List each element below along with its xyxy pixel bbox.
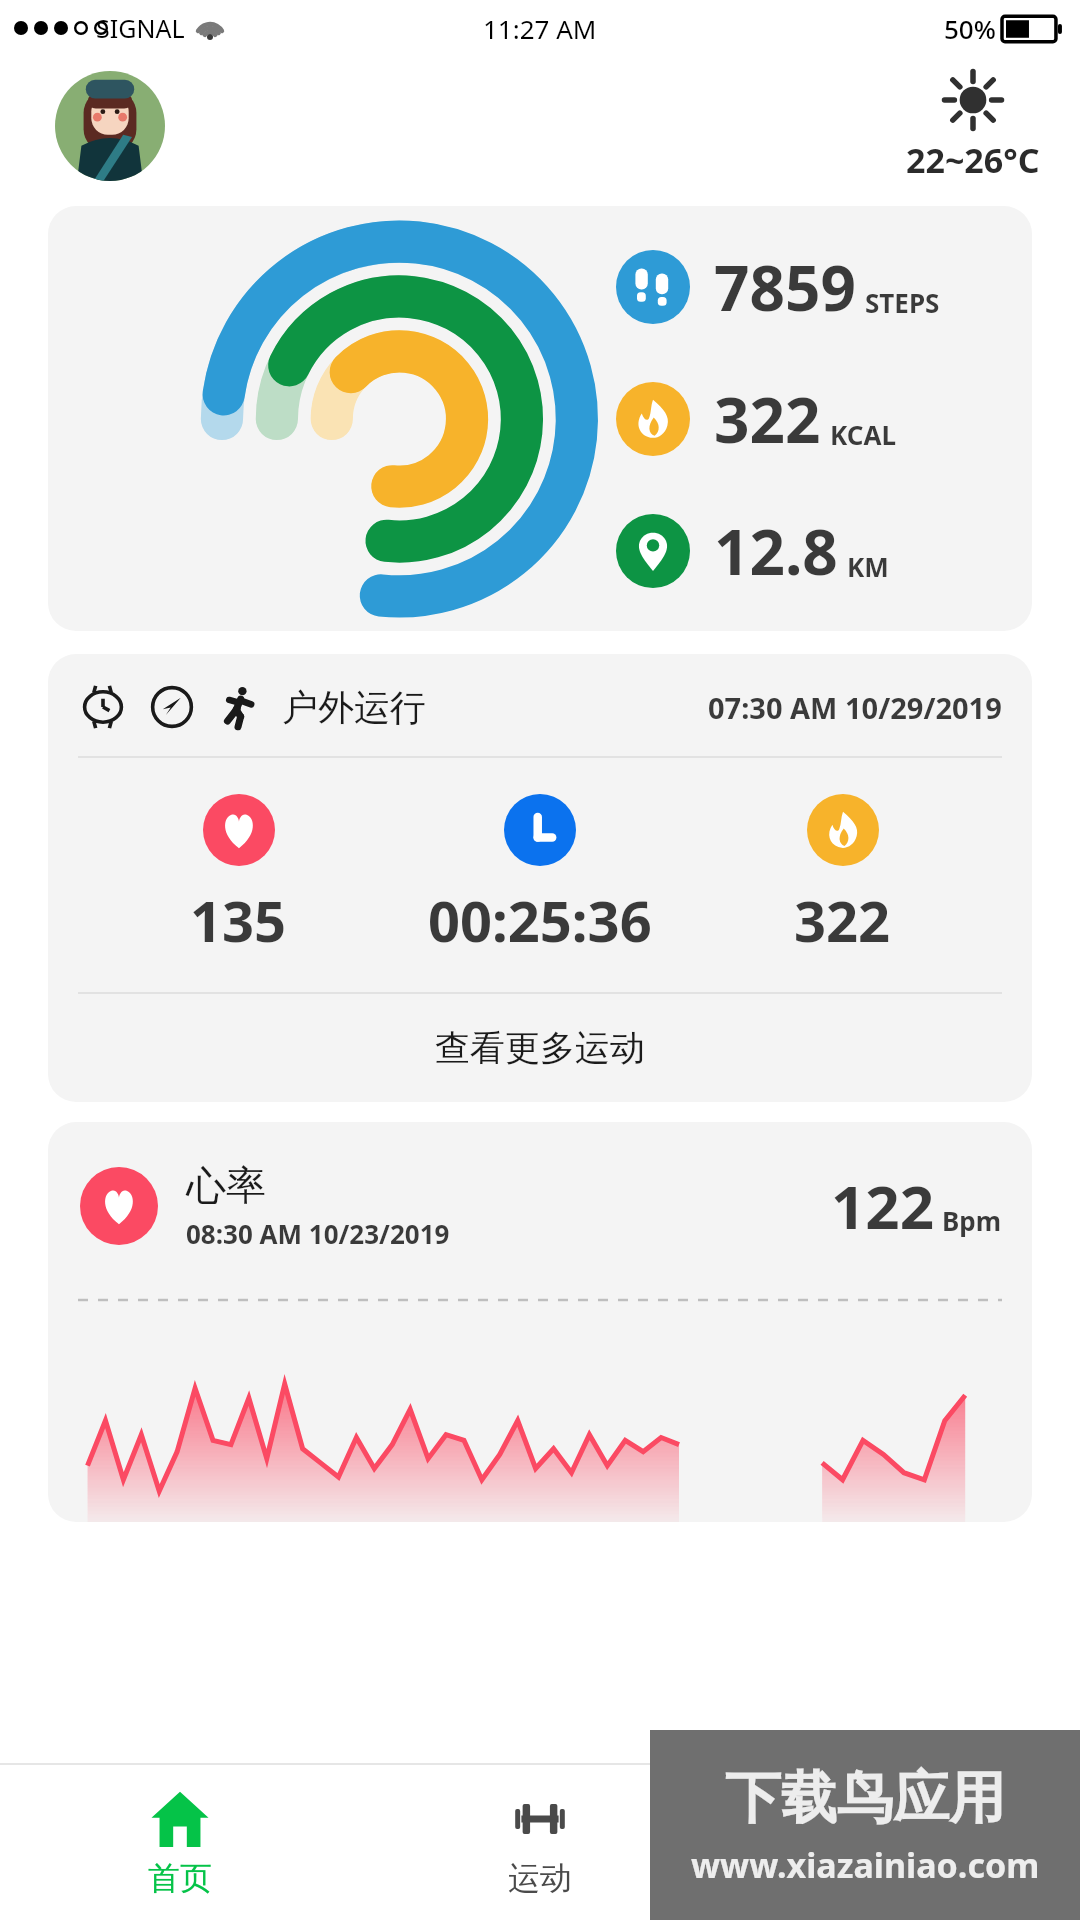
staticText: 135 (190, 882, 287, 958)
staticText: KM (847, 549, 889, 584)
staticText: 122 (831, 1165, 934, 1247)
staticText: STEPS (865, 285, 940, 320)
button[interactable]: 12.8 (616, 509, 889, 593)
staticText: 下载鸟应用 (725, 1763, 1005, 1834)
staticText: 7859 (714, 245, 856, 329)
staticText: 22~26°C (906, 137, 1040, 183)
button[interactable]: 心率 (48, 1122, 1032, 1522)
staticText: 运动 (508, 1858, 572, 1898)
staticText: 首页 (148, 1858, 212, 1898)
staticText: 12.8 (714, 509, 838, 593)
staticText: 322 (794, 882, 891, 958)
staticText: 07:30 AM 10/29/2019 (708, 688, 1002, 727)
staticText: Bpm (942, 1203, 1002, 1238)
staticText: www.xiazainiao.com (691, 1842, 1040, 1888)
button[interactable]: 322 (616, 377, 896, 461)
staticText: 心率 (186, 1160, 266, 1210)
staticText: 50% (944, 11, 996, 46)
button[interactable]: 7859 (616, 245, 940, 329)
staticText: 00:25:36 (428, 882, 652, 958)
staticText: 08:30 AM 10/23/2019 (186, 1216, 450, 1251)
staticText: 查看更多运动 (435, 1026, 645, 1070)
button[interactable]: 户外运行 (48, 654, 1032, 1102)
button[interactable]: Profile (55, 71, 165, 181)
staticText: 322 (714, 377, 821, 461)
button[interactable]: 00:25:36 (428, 794, 652, 958)
staticText: SIGNAL (96, 11, 185, 45)
button[interactable]: Weather (906, 69, 1040, 183)
button[interactable]: 查看更多运动 (48, 994, 1032, 1102)
button[interactable]: 135 (190, 794, 287, 958)
button[interactable]: 首页 (0, 1765, 360, 1920)
button[interactable]: 运动 (360, 1765, 720, 1920)
staticText: 11:27 AM (483, 11, 597, 46)
staticText: 户外运行 (282, 685, 426, 730)
staticText: KCAL (830, 417, 896, 452)
button[interactable]: 7859 (48, 206, 1032, 631)
button[interactable]: 322 (794, 794, 891, 958)
